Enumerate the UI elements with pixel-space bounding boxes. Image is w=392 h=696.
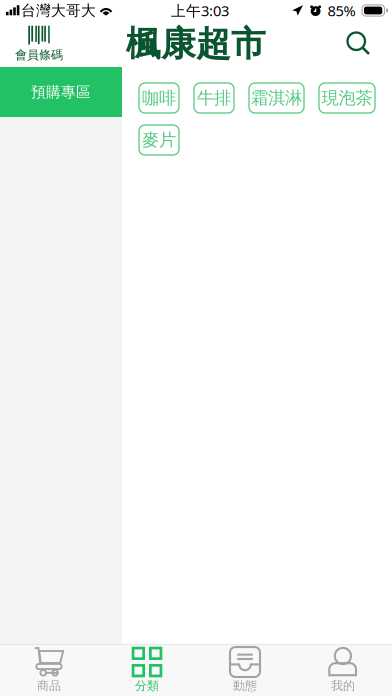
staticText: 上午3:03 <box>171 1 229 20</box>
staticText: 商品 <box>37 678 61 693</box>
staticText: 現泡茶 <box>321 87 372 109</box>
staticText: 動態 <box>233 678 257 693</box>
staticText: 我的 <box>331 678 355 693</box>
staticText: 預購專區 <box>31 83 91 101</box>
button[interactable]: Search <box>337 21 381 66</box>
button[interactable]: 會員條碼 <box>6 21 72 66</box>
button[interactable]: 我的 <box>294 644 392 696</box>
button[interactable]: 現泡茶 <box>319 83 375 113</box>
staticText: 會員條碼 <box>15 47 63 62</box>
button[interactable]: 動態 <box>196 644 294 696</box>
button[interactable]: 霜淇淋 <box>249 83 304 113</box>
button[interactable]: 咖啡 <box>139 83 179 113</box>
staticText: 霜淇淋 <box>251 87 302 109</box>
button[interactable]: 麥片 <box>139 125 179 155</box>
button[interactable]: 預購專區 <box>0 67 122 117</box>
staticText: 台灣大哥大 <box>21 1 96 19</box>
button[interactable]: 分類 <box>98 644 196 696</box>
staticText: 楓康超市 <box>126 23 266 65</box>
button[interactable]: 牛排 <box>194 83 234 113</box>
staticText: 咖啡 <box>142 87 176 109</box>
button[interactable]: 商品 <box>0 644 98 696</box>
staticText: 麥片 <box>142 129 176 151</box>
staticText: 分類 <box>135 678 159 693</box>
staticText: 85% <box>328 1 356 20</box>
staticText: 牛排 <box>197 87 231 109</box>
